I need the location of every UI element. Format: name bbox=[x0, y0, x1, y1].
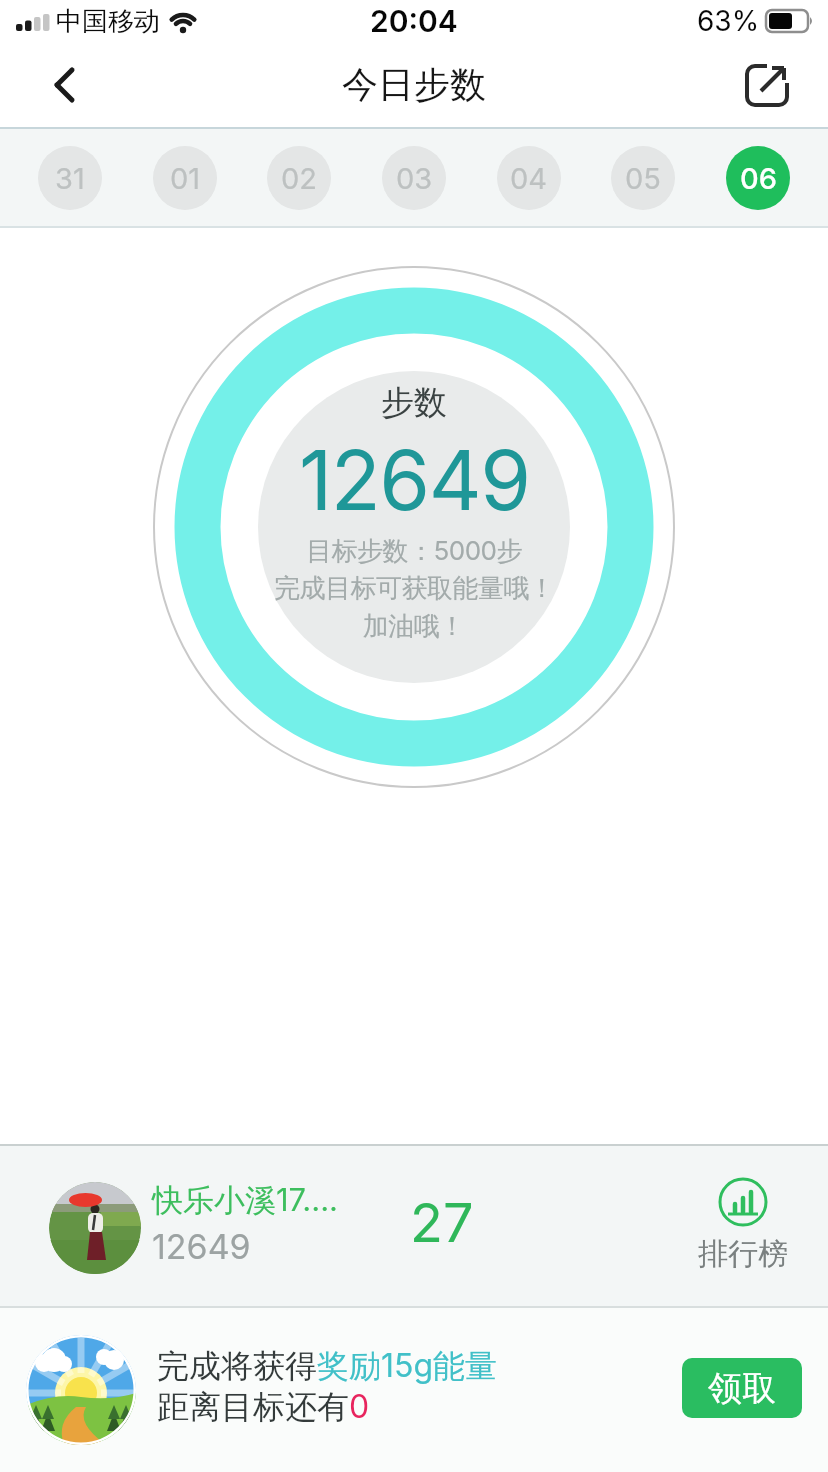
staticText: 20:04 bbox=[370, 3, 458, 39]
staticText: 完成将获得 bbox=[157, 1346, 317, 1386]
button[interactable] bbox=[744, 61, 792, 109]
staticText: 05 bbox=[625, 161, 661, 196]
button[interactable]: 05 bbox=[611, 146, 675, 210]
button[interactable]: 02 bbox=[267, 146, 331, 210]
staticText: 31 bbox=[55, 161, 85, 196]
button[interactable] bbox=[38, 59, 90, 111]
staticText: 27 bbox=[410, 1190, 474, 1255]
staticText: 领取 bbox=[708, 1367, 776, 1410]
staticText: 03 bbox=[396, 161, 433, 196]
staticText: 0 bbox=[349, 1387, 370, 1426]
staticText: 02 bbox=[281, 161, 317, 196]
staticText: 06 bbox=[740, 161, 777, 196]
staticText: 目标步数：5000步 bbox=[306, 535, 523, 568]
staticText: 中国移动 bbox=[56, 5, 160, 38]
staticText: 奖励15g能量 bbox=[317, 1346, 498, 1387]
button[interactable]: 01 bbox=[153, 146, 217, 210]
button[interactable]: 领取 bbox=[682, 1358, 802, 1418]
button[interactable]: 31 bbox=[38, 146, 102, 210]
staticText: 01 bbox=[170, 161, 201, 196]
staticText: 12649 bbox=[299, 431, 530, 530]
staticText: 完成目标可获取能量哦！ bbox=[274, 572, 555, 605]
staticText: 快乐小溪17.... bbox=[152, 1181, 338, 1220]
button[interactable]: 快乐小溪17.... bbox=[0, 1146, 828, 1306]
staticText: 12649 bbox=[152, 1226, 251, 1267]
button[interactable]: 03 bbox=[382, 146, 446, 210]
staticText: 距离目标还有 bbox=[157, 1387, 349, 1427]
staticText: 步数 bbox=[381, 382, 447, 424]
button[interactable]: 06 bbox=[726, 146, 790, 210]
staticText: 排行榜 bbox=[698, 1235, 788, 1273]
staticText: 加油哦！ bbox=[363, 610, 465, 643]
button[interactable]: 04 bbox=[497, 146, 561, 210]
staticText: 63% bbox=[697, 4, 760, 38]
staticText: 今日步数 bbox=[342, 62, 486, 107]
button[interactable]: 排行榜 bbox=[698, 1179, 788, 1273]
staticText: 04 bbox=[510, 161, 548, 196]
